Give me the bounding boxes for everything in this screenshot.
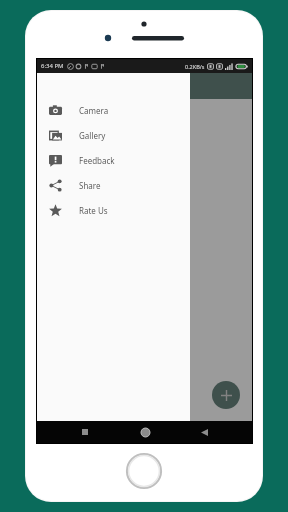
- button[interactable]: Camera: [37, 98, 190, 123]
- button[interactable]: Share: [37, 173, 190, 198]
- button[interactable]: Gallery: [37, 123, 190, 148]
- button[interactable]: Home: [134, 421, 156, 443]
- staticText: Feedback: [79, 155, 115, 166]
- staticText: Rate Us: [79, 205, 108, 216]
- button[interactable]: Recent apps: [74, 421, 96, 443]
- staticText: 0.2KB/s: [185, 63, 205, 70]
- staticText: Gallery: [79, 130, 106, 141]
- staticText: 6:34 PM: [41, 62, 64, 70]
- button[interactable]: Back: [193, 421, 215, 443]
- staticText: Camera: [79, 105, 109, 116]
- staticText: Share: [79, 180, 101, 191]
- button[interactable]: Add: [212, 381, 240, 409]
- button[interactable]: Rate Us: [37, 198, 190, 223]
- button[interactable]: Feedback: [37, 148, 190, 173]
